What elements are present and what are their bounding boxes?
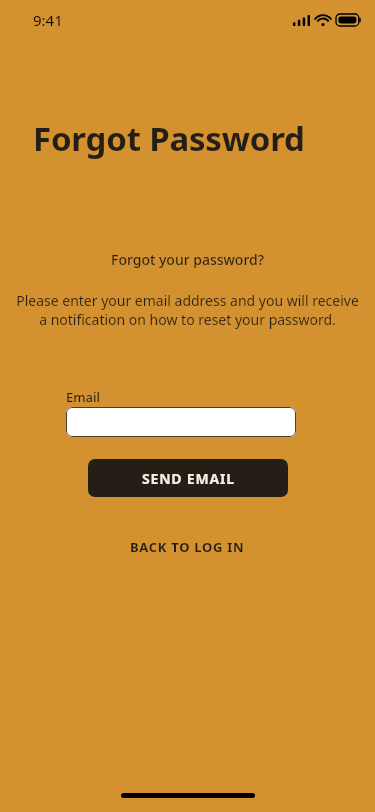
staticText: Forgot your password? <box>111 250 264 269</box>
staticText: BACK TO LOG IN <box>130 538 245 556</box>
button[interactable]: SEND EMAIL <box>88 459 288 497</box>
staticText: Please enter your email address and you … <box>16 291 359 329</box>
button[interactable]: BACK TO LOG IN <box>120 533 255 561</box>
button[interactable]: Email input field <box>66 407 296 437</box>
staticText: Forgot Password <box>33 116 305 161</box>
staticText: SEND EMAIL <box>142 469 235 488</box>
staticText: Email <box>66 388 101 406</box>
staticText: 9:41 <box>33 10 63 30</box>
